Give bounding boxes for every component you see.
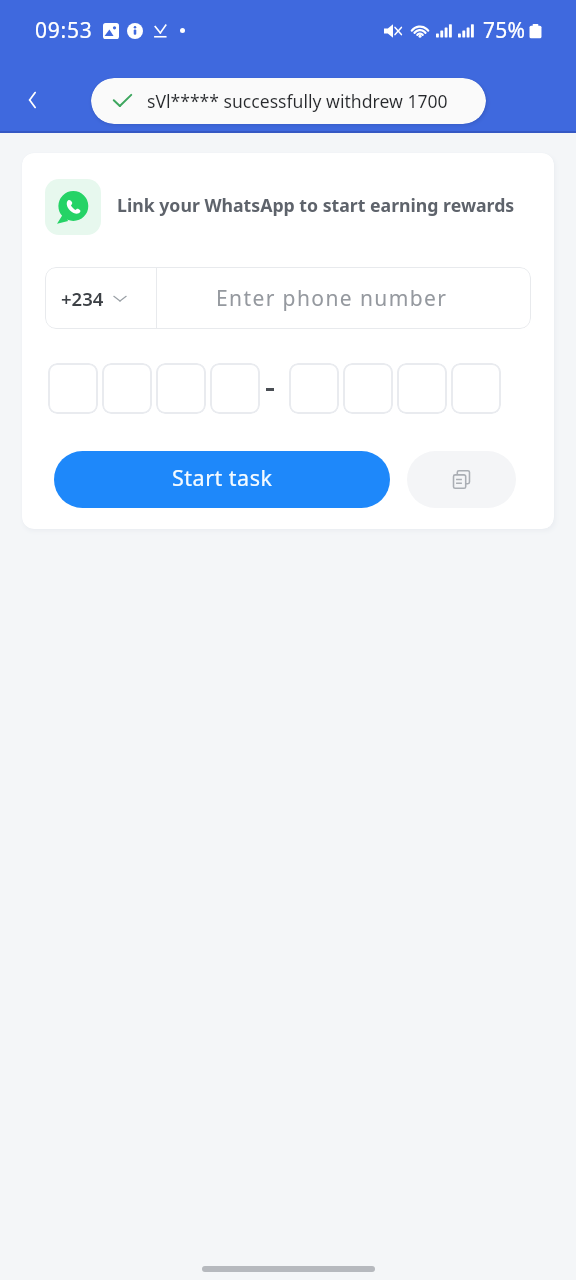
button[interactable] (102, 363, 152, 414)
button[interactable]: sVl***** successfully withdrew 1700 (91, 78, 486, 124)
button[interactable]: Start task (54, 451, 390, 508)
button[interactable]: Enter phone number (157, 267, 531, 329)
button[interactable] (289, 363, 339, 414)
button[interactable] (397, 363, 447, 414)
button[interactable]: +234 (45, 267, 156, 329)
staticText: Link your WhatsApp to start earning rewa… (117, 193, 515, 217)
staticText: 09:53 (35, 16, 93, 45)
staticText: +234 (61, 286, 104, 311)
button[interactable] (156, 363, 206, 414)
staticText: 75% (483, 16, 526, 45)
staticText: Start task (172, 463, 273, 492)
button[interactable]: Copy (407, 451, 516, 508)
staticText: Enter phone number (216, 284, 448, 313)
staticText: sVl***** successfully withdrew 1700 (147, 89, 448, 113)
button[interactable] (451, 363, 501, 414)
button[interactable] (210, 363, 260, 414)
button[interactable] (343, 363, 393, 414)
button[interactable] (48, 363, 98, 414)
button[interactable]: Back (9, 76, 57, 124)
